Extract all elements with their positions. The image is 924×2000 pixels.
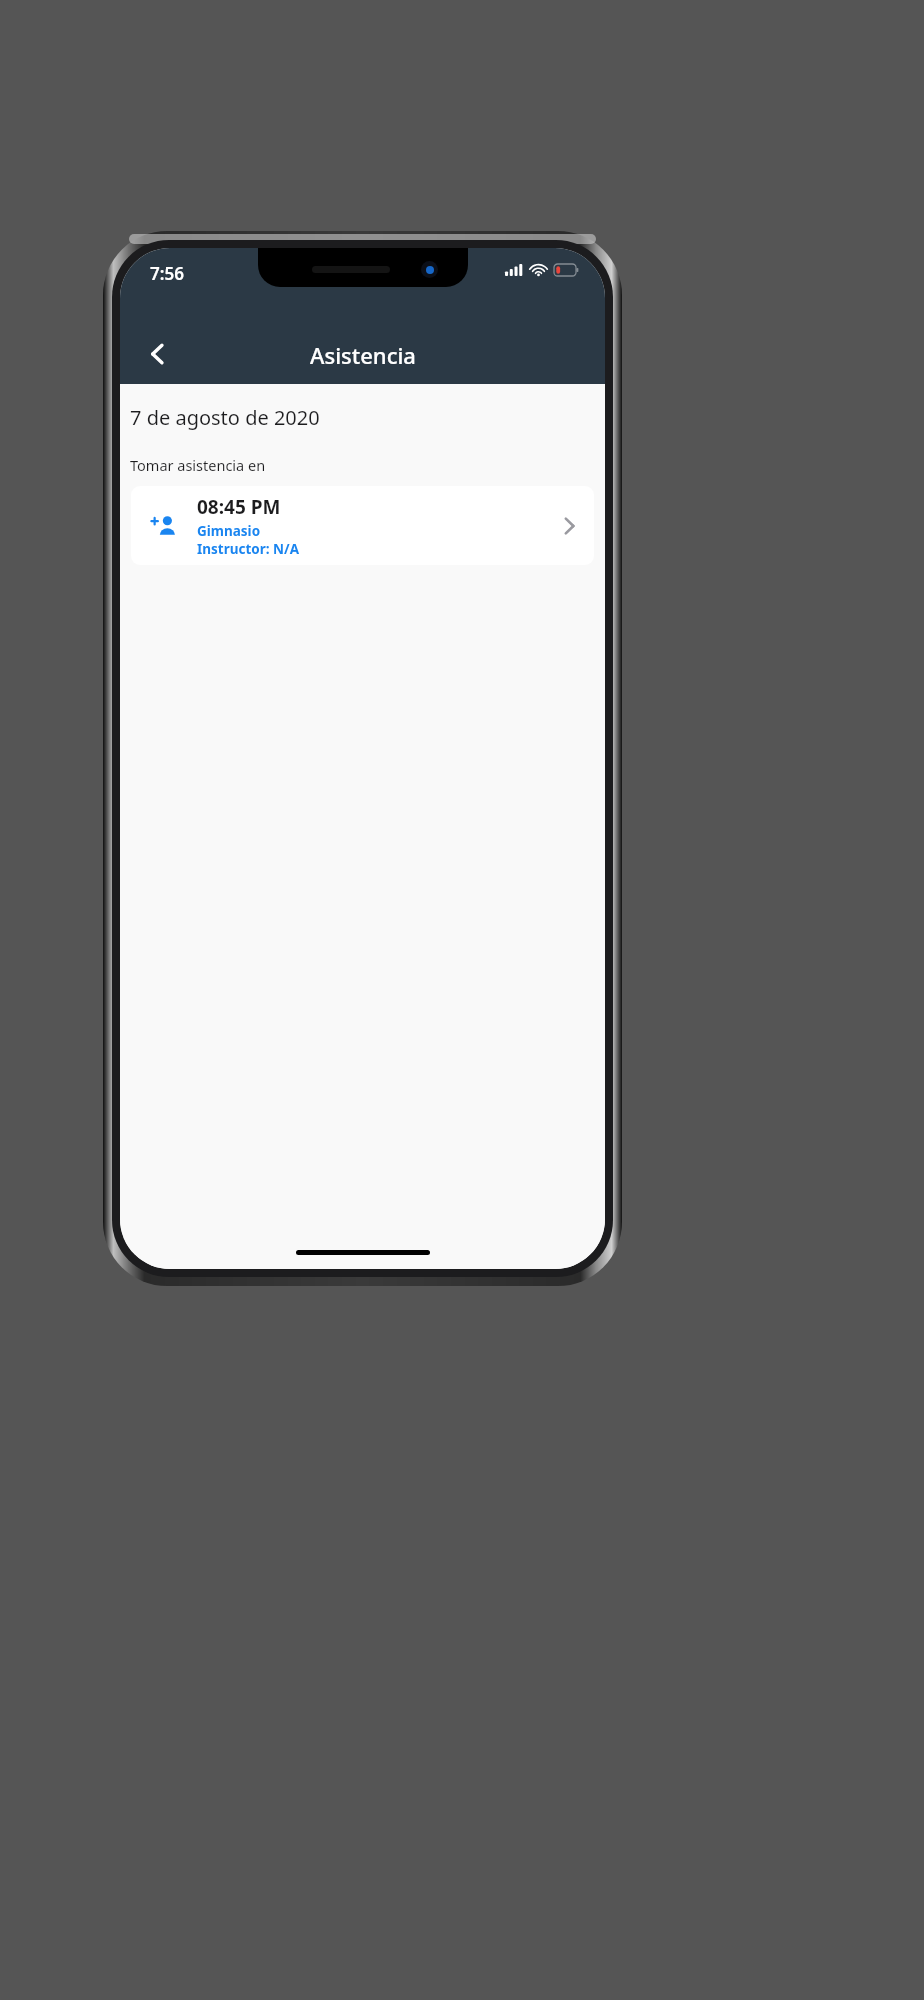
- button[interactable]: 08:45 PM: [131, 486, 594, 565]
- button[interactable]: Back: [132, 328, 184, 380]
- staticText: Asistencia: [310, 340, 416, 370]
- staticText: 7:56: [150, 262, 184, 285]
- staticText: 7 de agosto de 2020: [130, 404, 320, 431]
- staticText: 08:45 PM: [197, 494, 281, 520]
- staticText: Gimnasio: [197, 522, 261, 540]
- staticText: Tomar asistencia en: [130, 455, 266, 475]
- staticText: Instructor: N/A: [197, 540, 299, 558]
